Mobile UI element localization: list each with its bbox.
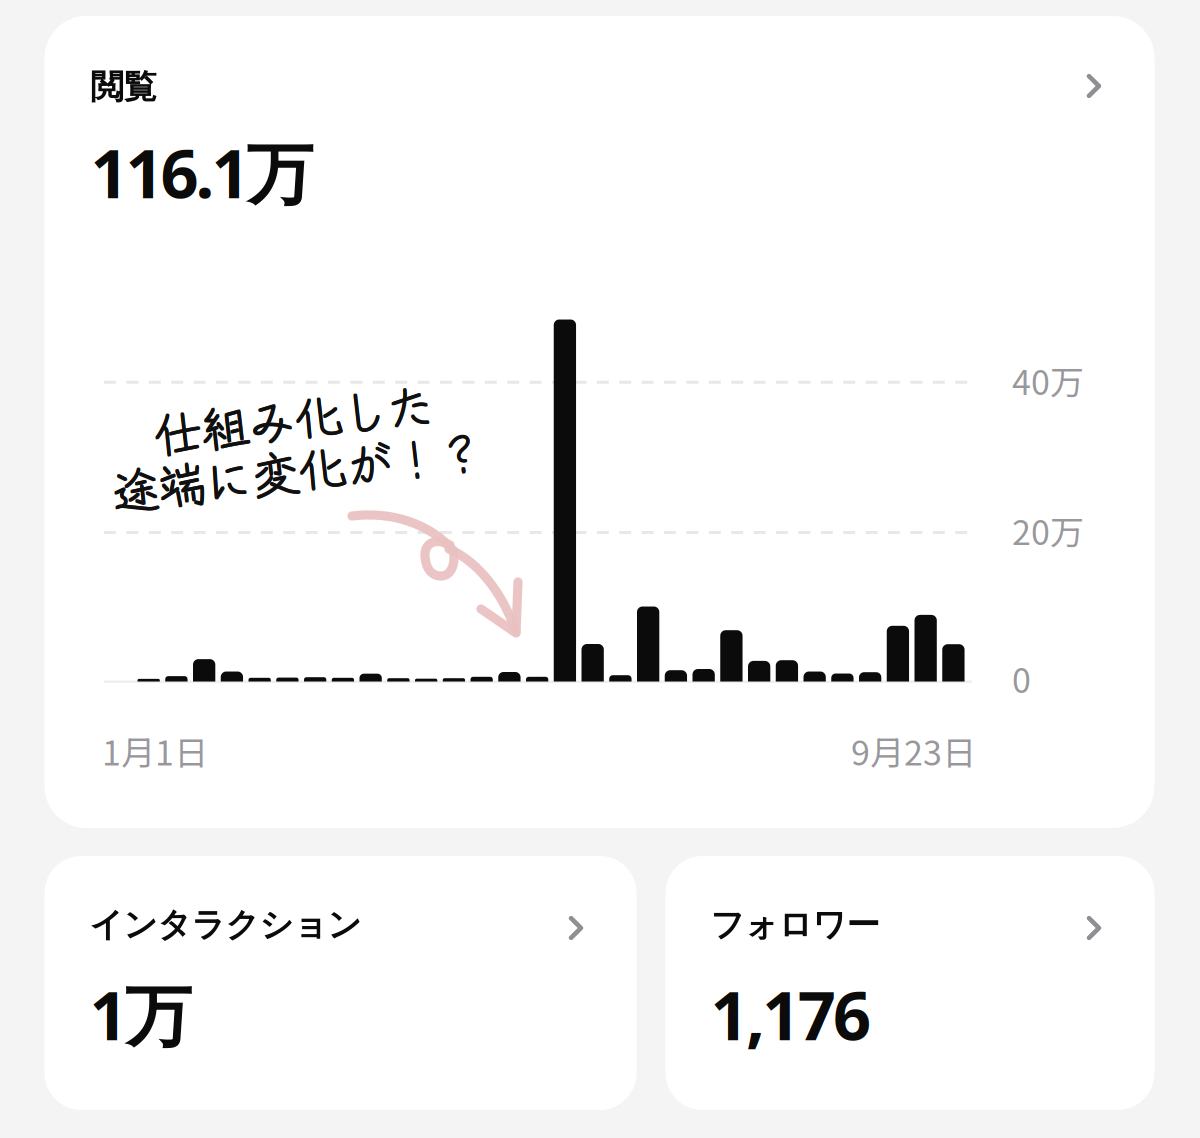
staticText: 20万 <box>1012 505 1084 555</box>
staticText: 仕組み化した <box>150 399 432 467</box>
staticText: 途端に変化が！？ <box>107 456 483 524</box>
staticText: 閲覧 <box>90 66 156 108</box>
staticText: 途端に変化が！？ <box>108 457 484 526</box>
staticText: 仕組み化した <box>151 400 433 469</box>
staticText: フォロワー <box>710 904 879 946</box>
staticText: 仕組み化した <box>150 400 432 469</box>
staticText: 116.1万 <box>90 127 313 218</box>
staticText: 1月1日 <box>102 726 208 775</box>
button[interactable]: フォロワー <box>665 856 1154 1110</box>
button[interactable]: インタラクション <box>44 856 636 1110</box>
staticText: 途端に変化が！？ <box>107 457 483 526</box>
staticText: 9月23日 <box>851 726 976 775</box>
button[interactable]: 閲覧 <box>44 16 1154 828</box>
staticText: 1,176 <box>710 969 871 1060</box>
staticText: 途端に変化が！？ <box>108 456 484 524</box>
staticText: 1万 <box>89 969 192 1060</box>
staticText: インタラクション <box>89 904 361 946</box>
staticText: 仕組み化した <box>151 399 433 467</box>
staticText: 0 <box>1012 653 1031 703</box>
staticText: 40万 <box>1012 355 1084 405</box>
